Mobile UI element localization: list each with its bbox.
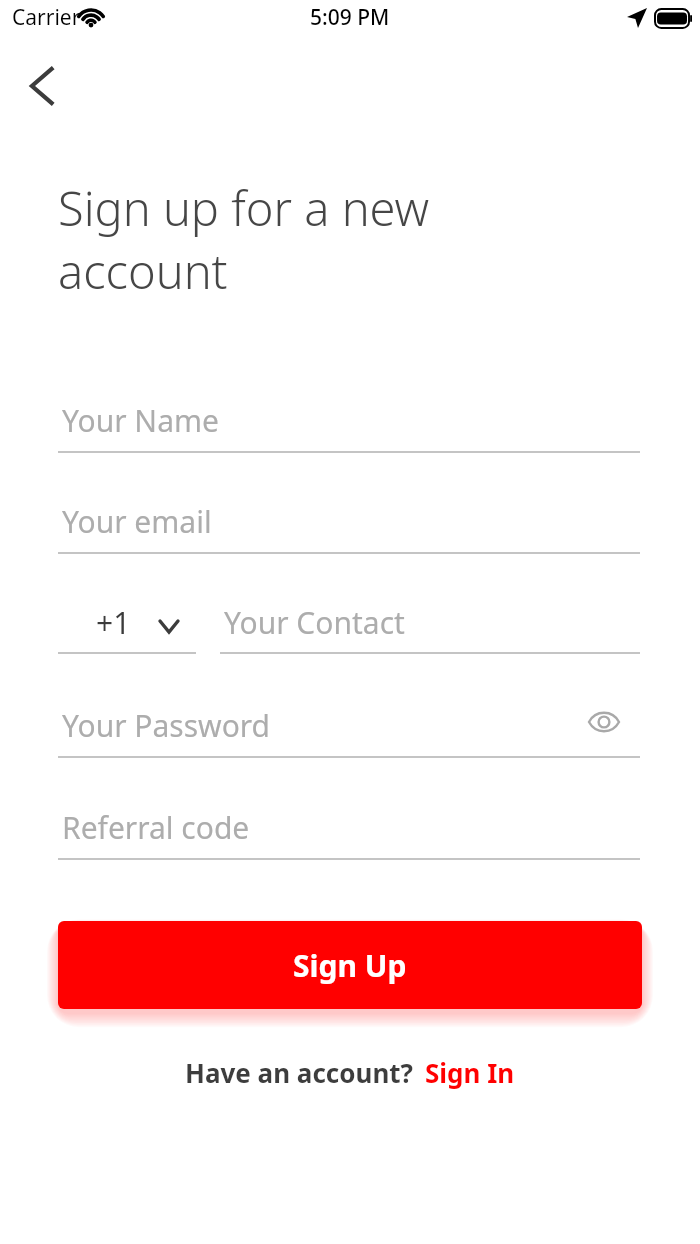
staticText: Referral code	[62, 807, 250, 848]
staticText: Your Contact	[224, 602, 405, 643]
button[interactable]: Show password	[576, 694, 632, 750]
button[interactable]: Sign In	[425, 1055, 515, 1090]
staticText: Your Name	[62, 400, 219, 441]
button[interactable]: Your Name	[58, 394, 640, 453]
button[interactable]: Sign Up	[58, 921, 642, 1009]
staticText: Your email	[62, 501, 212, 542]
button[interactable]: Your email	[58, 495, 640, 554]
button[interactable]: Your Password	[58, 699, 640, 758]
button[interactable]: Your Contact	[220, 596, 640, 654]
button[interactable]: Back	[16, 60, 68, 112]
staticText: 5:09 PM	[310, 3, 390, 32]
staticText: Have an account?	[185, 1055, 413, 1090]
staticText: Carrier	[12, 3, 81, 32]
staticText: Sign In	[425, 1055, 515, 1090]
staticText: Sign Up	[293, 945, 407, 986]
staticText: +1	[96, 602, 131, 643]
staticText: Sign up for a new account	[58, 176, 658, 302]
button[interactable]: Referral code	[58, 801, 640, 860]
staticText: Your Password	[62, 705, 271, 746]
button[interactable]: +1	[58, 596, 196, 654]
